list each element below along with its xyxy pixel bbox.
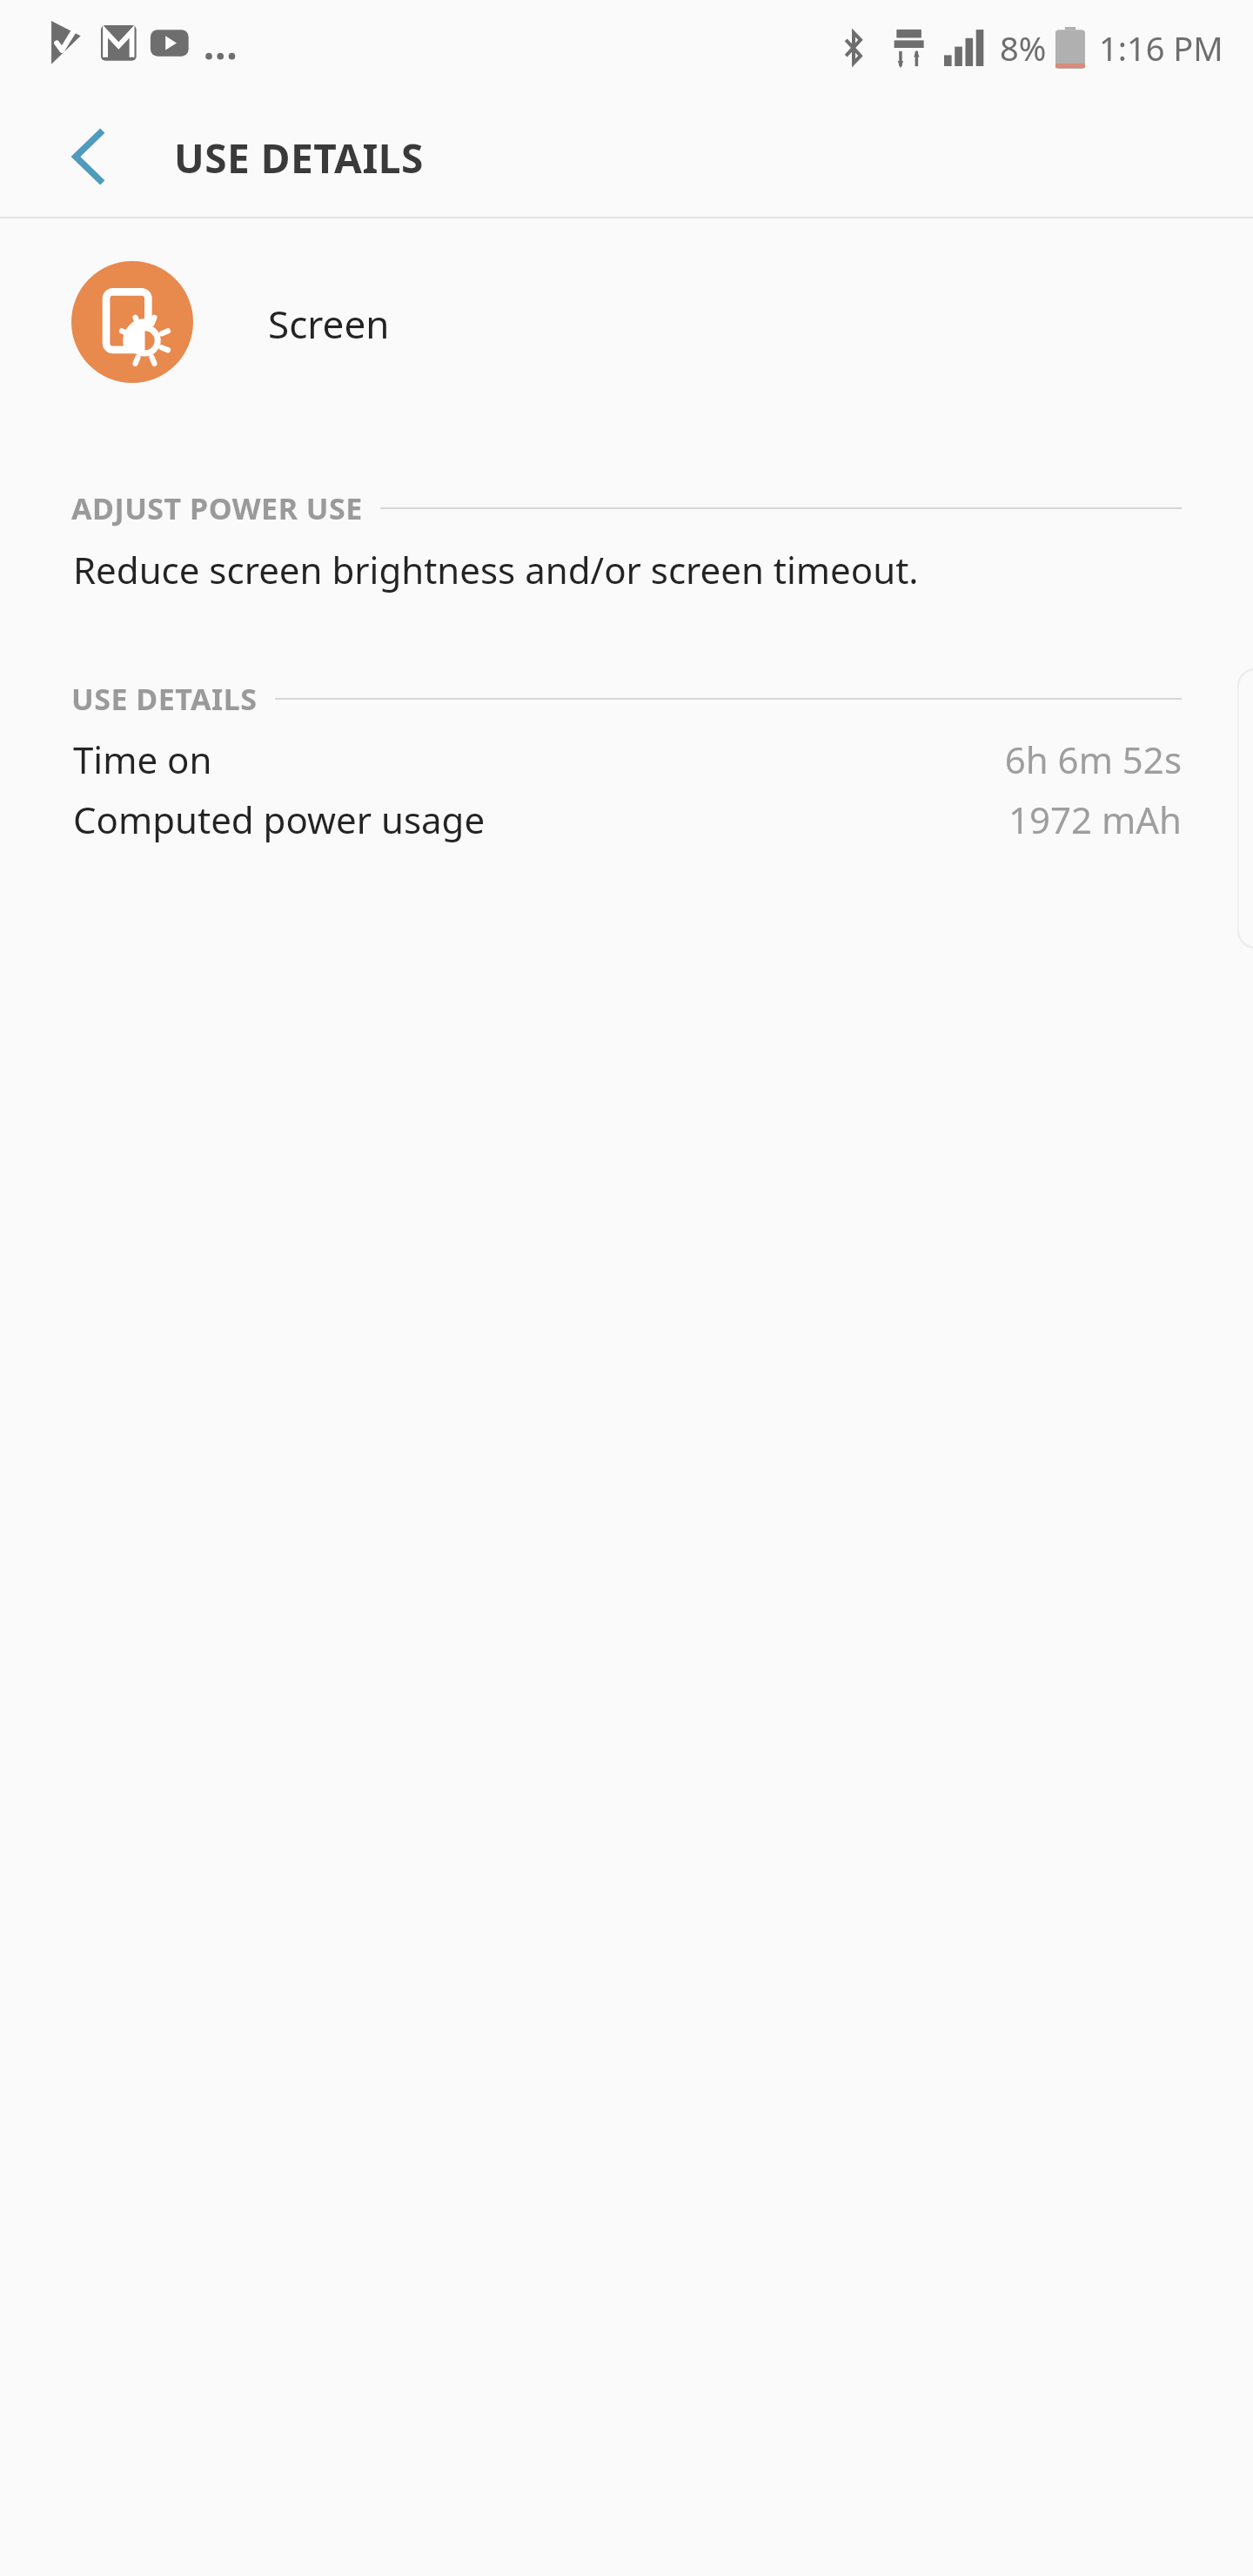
staticText: Computed power usage (73, 795, 486, 844)
staticText: USE DETAILS (174, 131, 424, 185)
button[interactable]: Time on (0, 731, 1253, 787)
button[interactable]: Back (40, 118, 136, 195)
staticText: 8% (1000, 25, 1047, 70)
button[interactable]: Edge panel handle (1237, 668, 1253, 949)
staticText: ADJUST POWER USE (71, 488, 363, 528)
button[interactable]: Screen (0, 245, 1253, 399)
staticText: 6h 6m 52s (1004, 735, 1182, 784)
staticText: USE DETAILS (71, 679, 258, 719)
staticText: 1:16 PM (1099, 25, 1223, 70)
staticText: Screen (268, 298, 390, 350)
staticText: Reduce screen brightness and/or screen t… (73, 545, 919, 594)
button[interactable]: Computed power usage (0, 791, 1253, 847)
staticText: 1972 mAh (1008, 795, 1182, 844)
staticText: Time on (73, 735, 212, 784)
